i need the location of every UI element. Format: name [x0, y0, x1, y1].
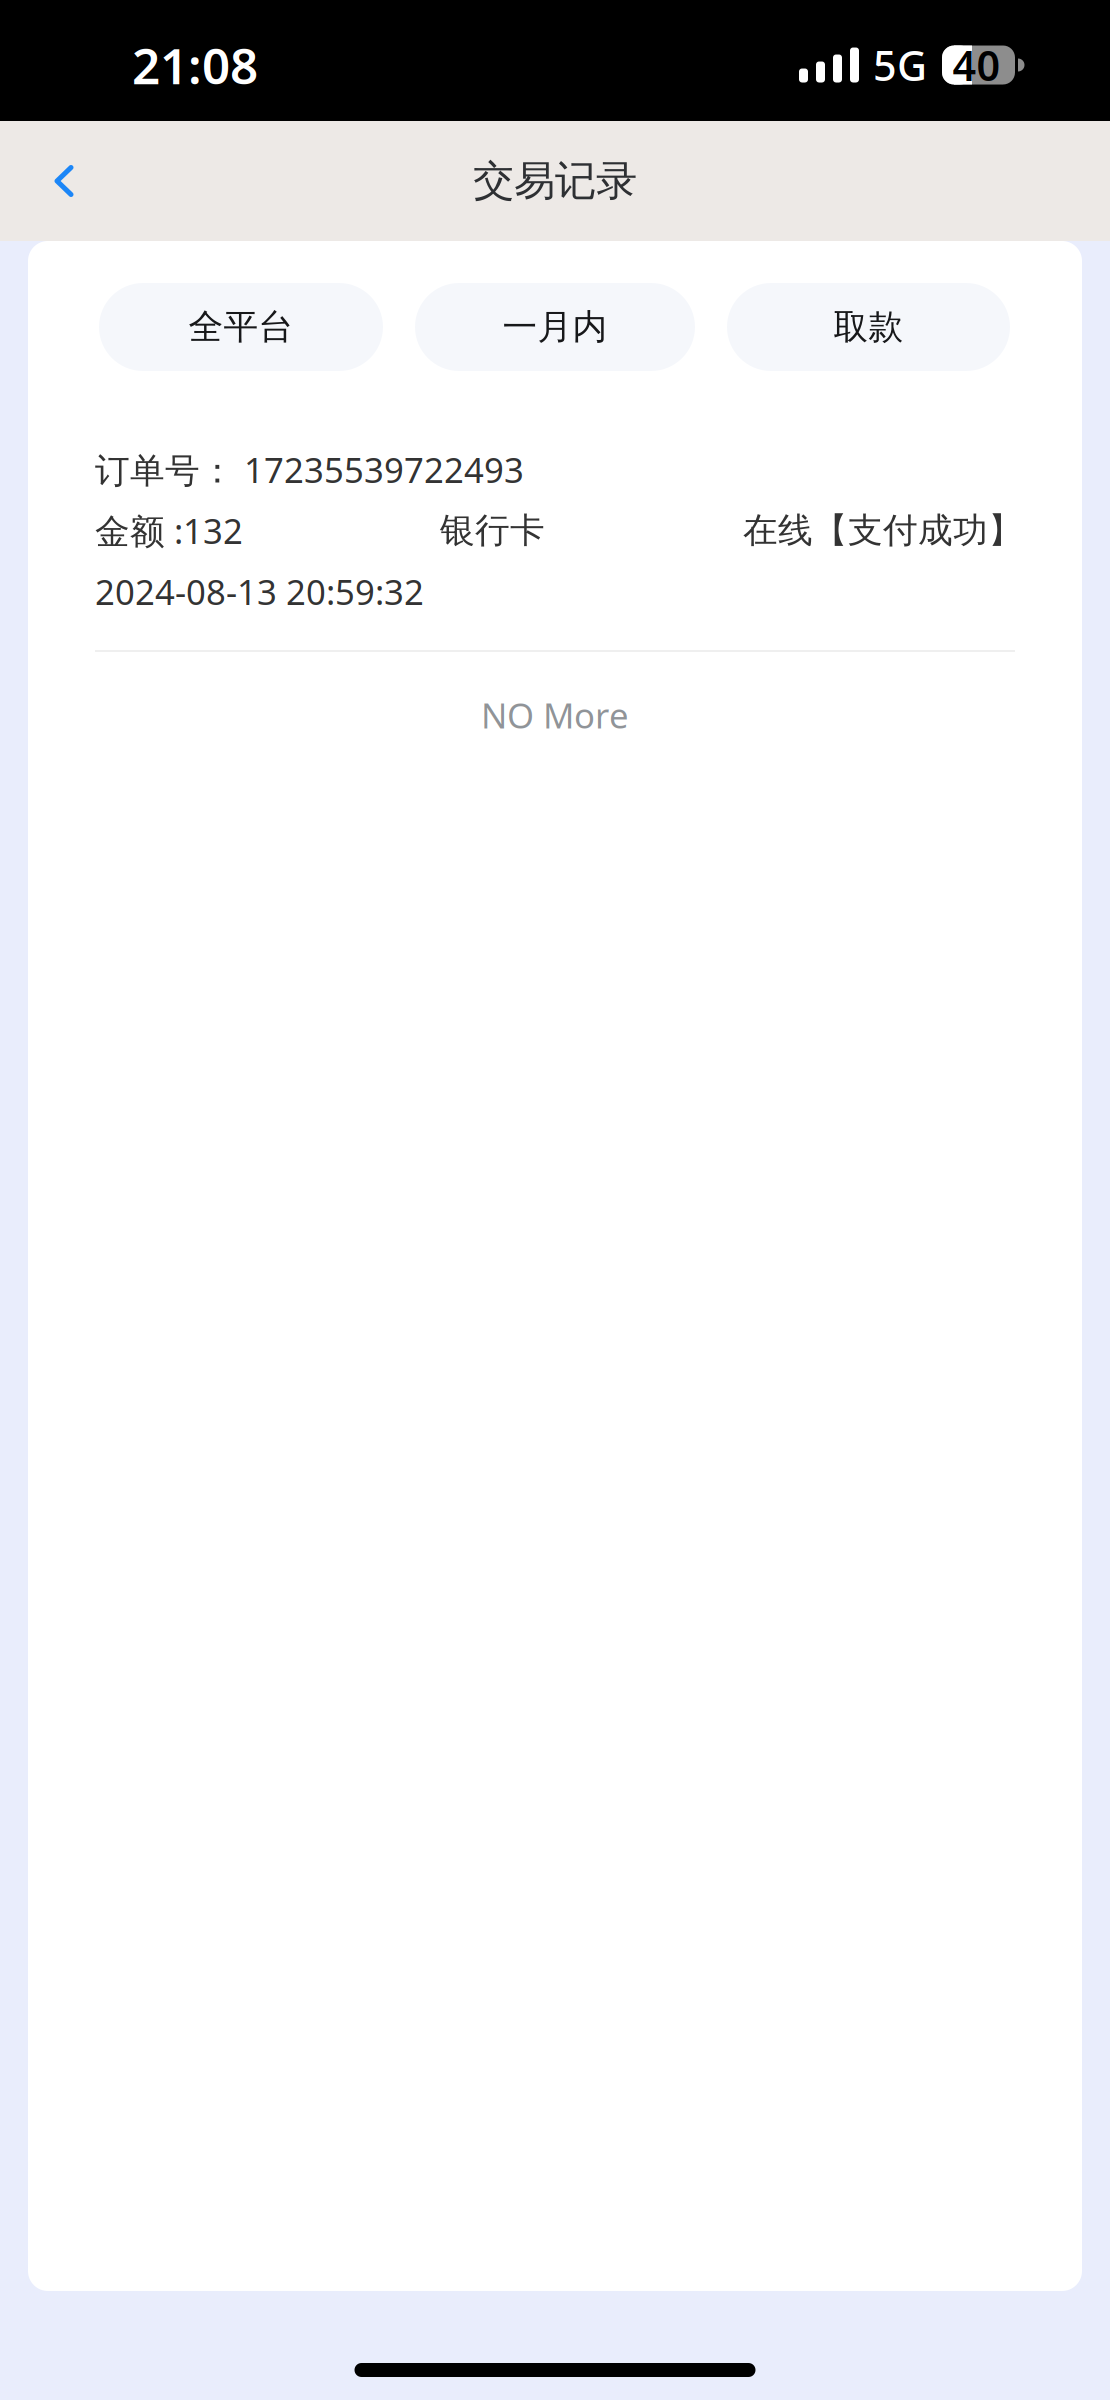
staticText: 交易记录	[473, 156, 637, 206]
staticText: 5G	[873, 38, 927, 92]
staticText: 取款	[833, 306, 903, 348]
button[interactable]: 订单号： 17235539722493	[95, 439, 1015, 622]
staticText: 订单号： 17235539722493	[95, 446, 524, 492]
staticText: 金额 :132	[95, 507, 243, 553]
button[interactable]: 全平台	[99, 283, 383, 371]
staticText: 在线【支付成功】	[743, 509, 1023, 552]
staticText: 2024-08-13 20:59:32	[95, 568, 424, 614]
staticText: NO More	[481, 692, 629, 738]
button[interactable]: 一月内	[415, 283, 695, 371]
staticText: 银行卡	[440, 509, 545, 552]
staticText: 一月内	[502, 306, 607, 348]
button[interactable]: Back	[27, 144, 101, 218]
staticText: 40	[952, 38, 1000, 92]
staticText: 全平台	[188, 306, 293, 348]
staticText: 21:08	[132, 32, 258, 98]
button[interactable]: 取款	[727, 283, 1010, 371]
